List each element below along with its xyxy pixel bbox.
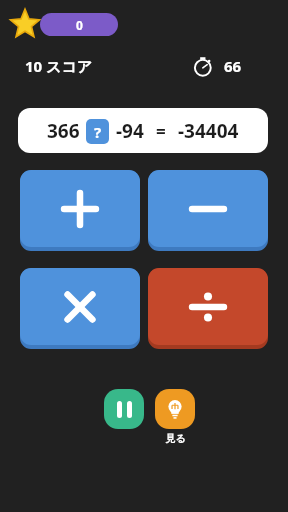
- staticText: -34404: [178, 118, 239, 144]
- staticText: 0: [76, 17, 83, 33]
- staticText: 見る: [165, 432, 186, 445]
- button[interactable]: Divide: [148, 268, 268, 349]
- button[interactable]: ?: [86, 119, 109, 144]
- button[interactable]: 0: [10, 9, 120, 39]
- staticText: =: [156, 120, 166, 143]
- button[interactable]: Multiply: [20, 268, 140, 349]
- staticText: ?: [94, 122, 102, 142]
- button[interactable]: Minus: [148, 170, 268, 251]
- staticText: 366: [47, 118, 80, 144]
- staticText: 66: [224, 56, 242, 76]
- staticText: 10 スコア: [25, 56, 93, 76]
- button[interactable]: Plus: [20, 170, 140, 251]
- staticText: -94: [116, 118, 144, 144]
- button[interactable]: Pause: [104, 389, 144, 429]
- button[interactable]: Hint: [155, 389, 195, 429]
